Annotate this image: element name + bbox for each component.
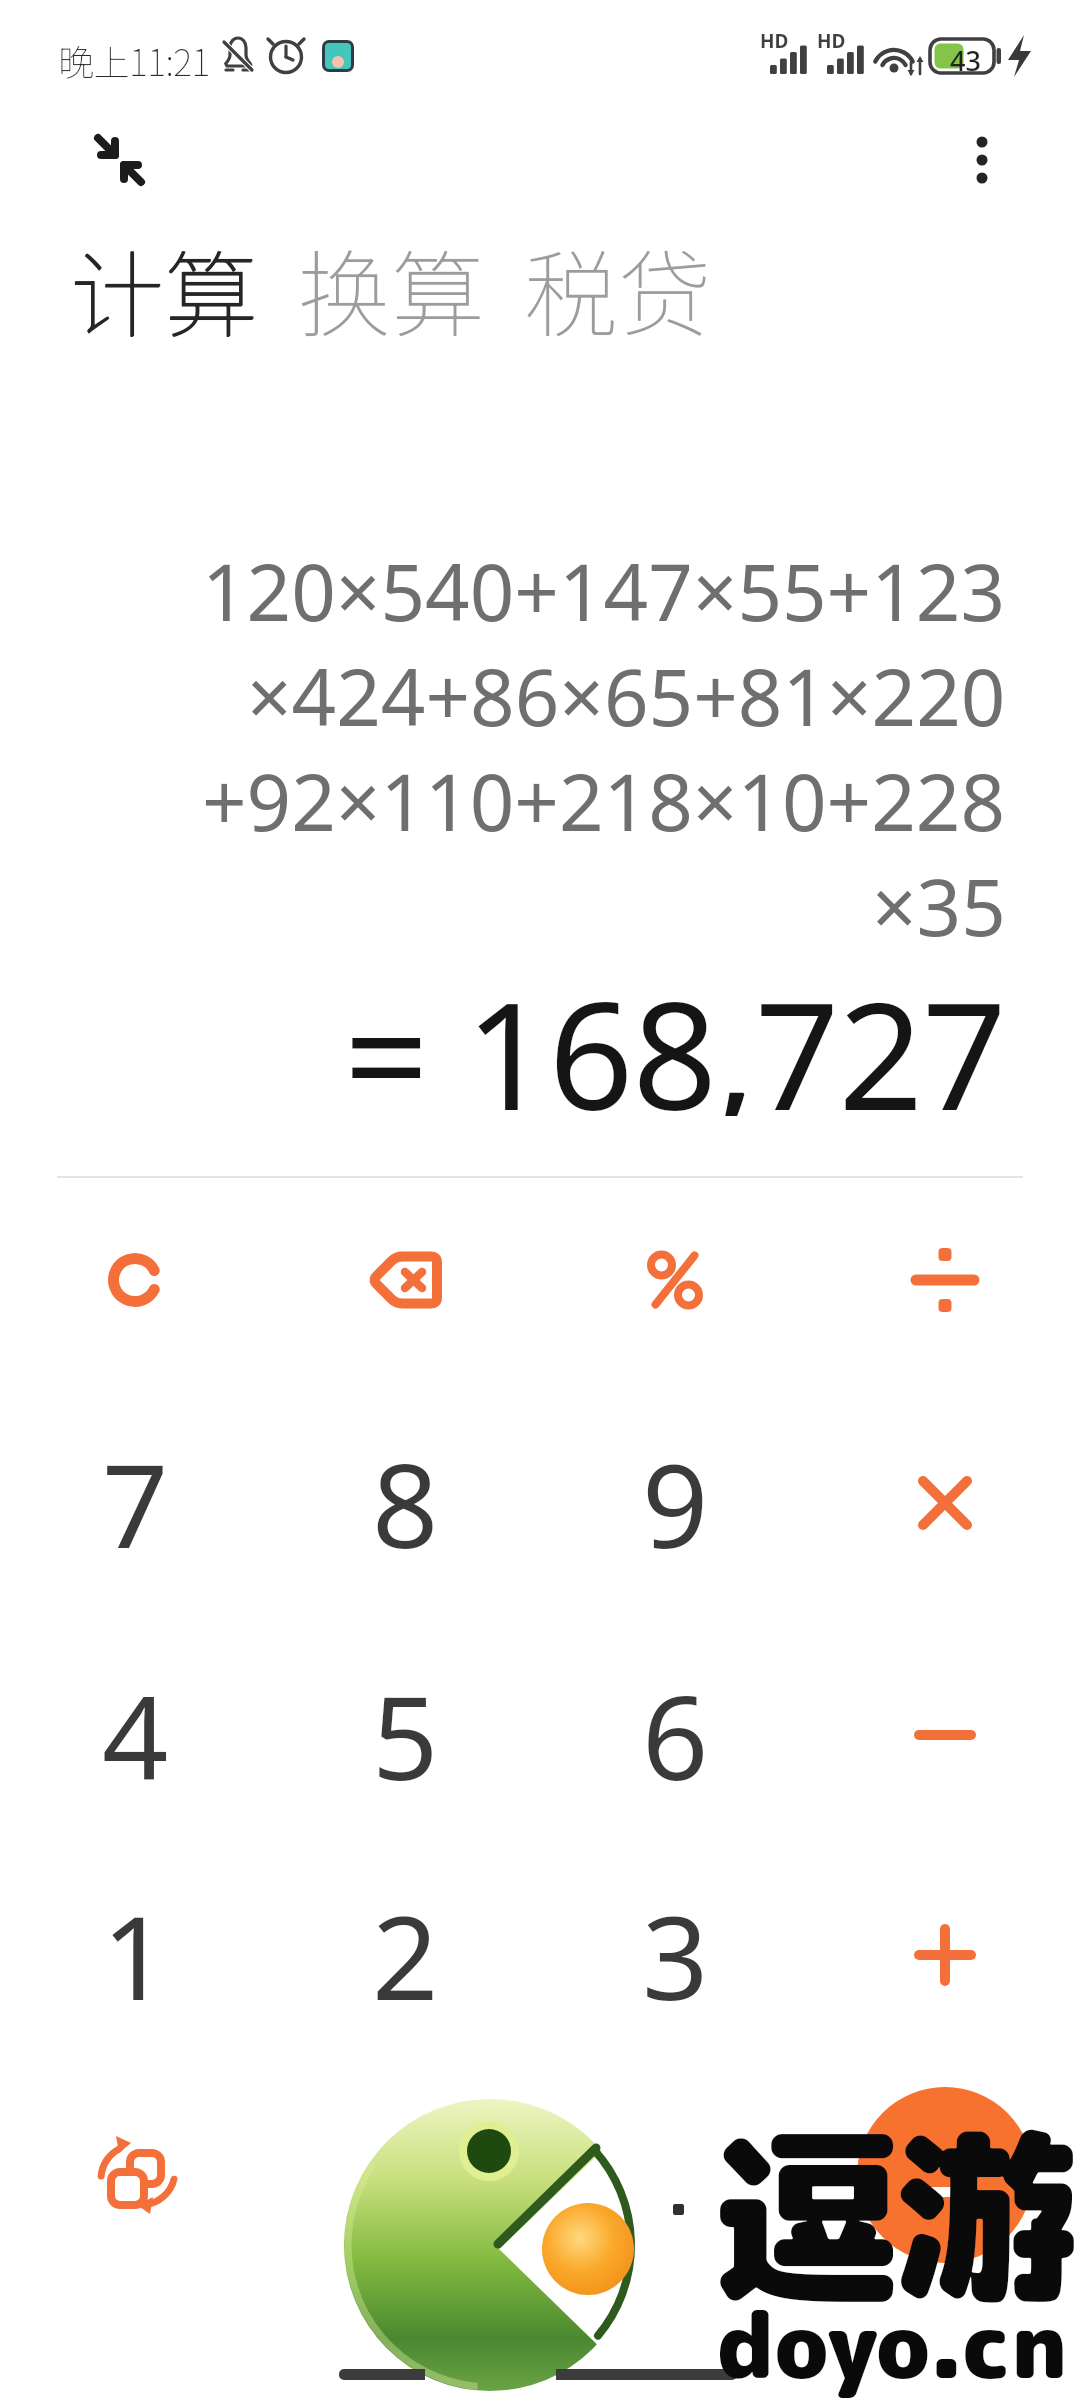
button[interactable]: 5 — [270, 1624, 540, 1846]
button[interactable]: 4 — [0, 1624, 270, 1846]
staticText: 120×540+147×55+123 — [202, 538, 1006, 643]
staticText: 4 — [102, 1656, 169, 1814]
staticText: 计算 — [71, 220, 260, 356]
staticText: 6 — [642, 1656, 709, 1814]
button[interactable] — [810, 1624, 1080, 1846]
button[interactable] — [270, 1169, 540, 1391]
staticText: 逗游 — [713, 2084, 1076, 2343]
button[interactable] — [810, 1169, 1080, 1391]
button[interactable] — [80, 120, 160, 200]
button[interactable] — [0, 1169, 270, 1391]
button[interactable] — [540, 1169, 810, 1391]
staticText: 3 — [642, 1876, 709, 2034]
staticText: HD — [817, 28, 846, 54]
staticText: ×424+86×65+81×220 — [247, 643, 1006, 748]
staticText: 计算 — [70, 220, 259, 356]
button[interactable] — [0, 2064, 270, 2286]
button[interactable] — [270, 2064, 540, 2286]
button[interactable] — [950, 112, 1014, 208]
staticText: 8 — [372, 1424, 439, 1582]
staticText: doyo.cn — [717, 2281, 1068, 2400]
staticText: 5 — [372, 1656, 439, 1814]
staticText: 2 — [372, 1876, 439, 2034]
button[interactable]: 6 — [540, 1624, 810, 1846]
staticText: 1 — [102, 1876, 169, 2034]
staticText: 9 — [642, 1424, 709, 1582]
button[interactable] — [540, 2064, 810, 2286]
button[interactable]: 2 — [270, 1844, 540, 2066]
button[interactable] — [810, 1392, 1080, 1614]
button[interactable]: 7 — [0, 1392, 270, 1614]
staticText: ×35 — [872, 853, 1006, 958]
staticText: HD — [760, 28, 789, 54]
button[interactable]: 8 — [270, 1392, 540, 1614]
button[interactable] — [810, 1844, 1080, 2066]
staticText: 43 — [950, 42, 981, 79]
button[interactable]: 计算 — [70, 220, 259, 356]
staticText: 晚上11:21 — [58, 34, 210, 86]
button[interactable]: 1 — [0, 1844, 270, 2066]
button[interactable]: 换算 — [297, 220, 486, 356]
button[interactable]: 9 — [540, 1392, 810, 1614]
button[interactable]: 3 — [540, 1844, 810, 2066]
staticText: 7 — [102, 1424, 169, 1582]
button[interactable]: 税贷 — [524, 220, 713, 356]
button[interactable] — [810, 2064, 1080, 2286]
staticText: 计算 — [70, 221, 259, 357]
staticText: +92×110+218×10+228 — [202, 748, 1006, 853]
staticText: = 168,727 — [344, 952, 1006, 1116]
